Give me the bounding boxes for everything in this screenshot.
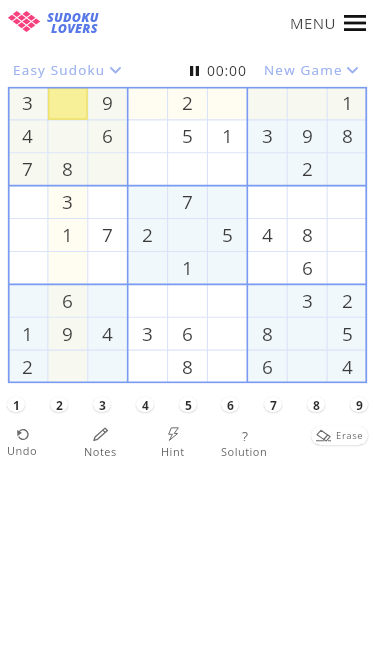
button[interactable]: Pause (188, 59, 249, 82)
button[interactable]: 9 (350, 397, 368, 412)
button[interactable] (47, 119, 87, 152)
button[interactable]: 8 (307, 397, 325, 412)
button[interactable] (47, 87, 87, 119)
button[interactable]: 7 (264, 397, 282, 412)
button[interactable]: 2 (8, 350, 47, 383)
button[interactable]: 1 (207, 119, 247, 152)
button[interactable]: 2 (327, 284, 367, 317)
button[interactable]: 9 (287, 119, 327, 152)
button[interactable] (87, 251, 127, 284)
button[interactable] (287, 185, 327, 218)
button[interactable] (47, 251, 87, 284)
button[interactable] (127, 87, 167, 119)
button[interactable]: 4 (247, 218, 287, 251)
button[interactable] (247, 87, 287, 119)
button[interactable] (167, 218, 207, 251)
button[interactable] (87, 185, 127, 218)
button[interactable] (327, 218, 367, 251)
button[interactable] (207, 87, 247, 119)
button[interactable]: 6 (287, 251, 327, 284)
button[interactable]: 2 (287, 152, 327, 185)
button[interactable]: 8 (47, 152, 87, 185)
button[interactable] (167, 284, 207, 317)
button[interactable] (87, 284, 127, 317)
button[interactable]: Notes (70, 424, 130, 460)
button[interactable]: 8 (287, 218, 327, 251)
button[interactable] (127, 251, 167, 284)
button[interactable] (47, 350, 87, 383)
button[interactable]: 3 (247, 119, 287, 152)
button[interactable]: Erase (311, 426, 368, 445)
button[interactable] (247, 185, 287, 218)
button[interactable] (127, 119, 167, 152)
button[interactable] (8, 185, 47, 218)
button[interactable]: 3 (93, 397, 111, 412)
button[interactable]: 1 (8, 317, 47, 350)
button[interactable]: 1 (7, 397, 25, 412)
button[interactable] (127, 152, 167, 185)
button[interactable] (247, 152, 287, 185)
button[interactable]: SUDOKU (11, 8, 105, 36)
button[interactable] (8, 251, 47, 284)
button[interactable] (327, 185, 367, 218)
button[interactable] (327, 152, 367, 185)
button[interactable]: 6 (87, 119, 127, 152)
button[interactable]: 8 (247, 317, 287, 350)
button[interactable] (207, 350, 247, 383)
button[interactable]: 5 (327, 317, 367, 350)
button[interactable]: 8 (327, 119, 367, 152)
button[interactable] (287, 317, 327, 350)
button[interactable]: 3 (8, 87, 47, 119)
button[interactable] (127, 284, 167, 317)
button[interactable] (207, 185, 247, 218)
button[interactable]: MENU (290, 13, 366, 33)
button[interactable]: 6 (47, 284, 87, 317)
button[interactable] (207, 317, 247, 350)
button[interactable]: 8 (167, 350, 207, 383)
button[interactable] (207, 152, 247, 185)
button[interactable] (87, 350, 127, 383)
button[interactable]: 3 (47, 185, 87, 218)
button[interactable] (87, 152, 127, 185)
button[interactable]: 4 (327, 350, 367, 383)
button[interactable] (8, 218, 47, 251)
button[interactable]: Easy Sudoku (11, 59, 122, 81)
button[interactable]: New Game (262, 59, 359, 81)
button[interactable] (207, 284, 247, 317)
button[interactable]: 7 (167, 185, 207, 218)
button[interactable] (287, 87, 327, 119)
button[interactable] (247, 284, 287, 317)
button[interactable] (127, 350, 167, 383)
button[interactable]: 4 (8, 119, 47, 152)
button[interactable]: 9 (87, 87, 127, 119)
button[interactable] (127, 185, 167, 218)
button[interactable]: 2 (50, 397, 68, 412)
button[interactable]: 2 (167, 87, 207, 119)
button[interactable] (207, 251, 247, 284)
button[interactable]: 3 (287, 284, 327, 317)
button[interactable]: 5 (179, 397, 197, 412)
button[interactable]: 1 (167, 251, 207, 284)
button[interactable]: 5 (167, 119, 207, 152)
button[interactable] (327, 251, 367, 284)
button[interactable]: 3 (127, 317, 167, 350)
button[interactable]: 5 (207, 218, 247, 251)
button[interactable] (287, 350, 327, 383)
button[interactable]: 6 (167, 317, 207, 350)
button[interactable]: 2 (127, 218, 167, 251)
button[interactable] (247, 251, 287, 284)
button[interactable]: 6 (247, 350, 287, 383)
button[interactable]: ? (214, 424, 274, 460)
button[interactable]: Hint (143, 424, 203, 460)
button[interactable]: 4 (136, 397, 154, 412)
button[interactable]: Undo (0, 424, 52, 460)
button[interactable]: 7 (8, 152, 47, 185)
button[interactable]: 1 (47, 218, 87, 251)
button[interactable] (167, 152, 207, 185)
button[interactable]: 9 (47, 317, 87, 350)
button[interactable]: 4 (87, 317, 127, 350)
button[interactable]: 6 (221, 397, 239, 412)
button[interactable]: 7 (87, 218, 127, 251)
button[interactable] (8, 284, 47, 317)
button[interactable]: 1 (327, 87, 367, 119)
